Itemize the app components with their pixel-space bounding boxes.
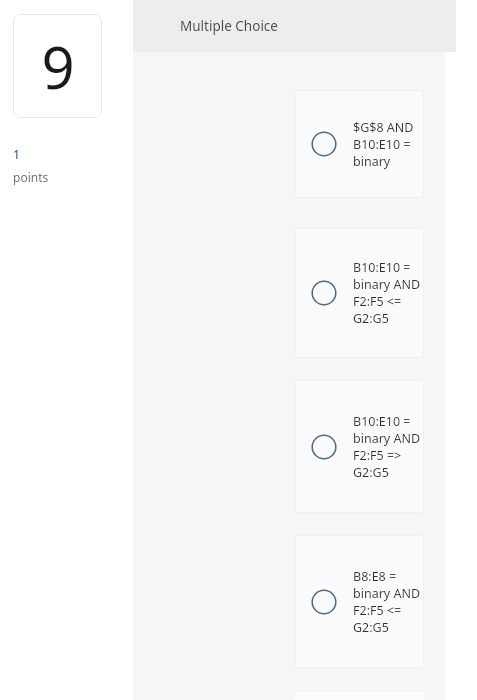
- staticText: B10:E10 =: [353, 413, 411, 430]
- button[interactable]: Select answer: [295, 90, 424, 198]
- staticText: binary: [353, 153, 391, 170]
- staticText: binary AND: [353, 430, 421, 447]
- button[interactable]: Select answer: [295, 535, 424, 668]
- staticText: G2:G5: [353, 310, 389, 327]
- staticText: F2:F5 <=: [353, 293, 402, 310]
- other: Select answer: [311, 280, 337, 306]
- staticText: B8:E8 =: [353, 568, 397, 585]
- button[interactable]: Select answer: [295, 228, 424, 358]
- staticText: G2:G5: [353, 464, 389, 481]
- other: Select answer: [311, 131, 337, 157]
- staticText: 9: [41, 27, 75, 106]
- staticText: Multiple Choice: [180, 17, 278, 35]
- staticText: B10:E10 =: [353, 136, 411, 153]
- staticText: binary AND: [353, 585, 421, 602]
- staticText: points: [13, 169, 49, 185]
- staticText: G2:G5: [353, 619, 389, 636]
- staticText: F2:F5 =>: [353, 447, 402, 464]
- staticText: B10:E10 =: [353, 259, 411, 276]
- other: Select answer: [311, 589, 337, 615]
- staticText: 1: [13, 146, 20, 162]
- button[interactable]: Select answer: [295, 380, 424, 513]
- other: Select answer: [311, 434, 337, 460]
- staticText: F2:F5 <=: [353, 602, 402, 619]
- staticText: binary AND: [353, 276, 421, 293]
- staticText: $G$8 AND: [353, 119, 414, 136]
